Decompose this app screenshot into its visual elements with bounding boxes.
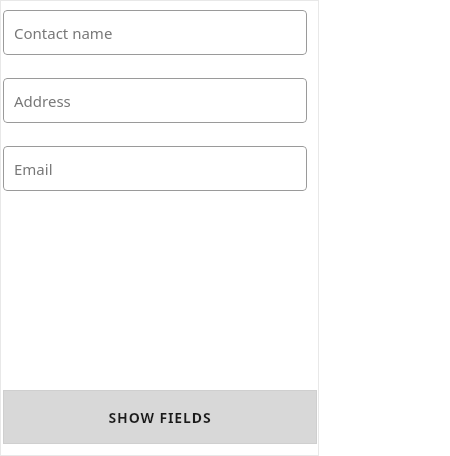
staticText: Address: [14, 91, 71, 111]
button[interactable]: Address: [3, 78, 307, 123]
staticText: Contact name: [14, 23, 113, 43]
staticText: SHOW FIELDS: [108, 408, 212, 427]
button[interactable]: Contact name: [3, 10, 307, 55]
button[interactable]: SHOW FIELDS: [3, 390, 317, 444]
staticText: Email: [14, 159, 53, 179]
button[interactable]: Email: [3, 146, 307, 191]
